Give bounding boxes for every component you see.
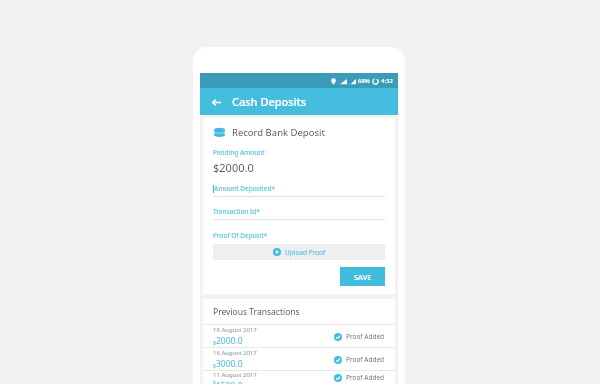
staticText: 11 August 2017: [213, 371, 257, 379]
staticText: Previous Transactions: [213, 306, 300, 318]
staticText: Proof Of Deposit*: [213, 231, 268, 240]
staticText: Record Bank Deposit: [232, 126, 325, 139]
button[interactable]: Back: [206, 92, 226, 112]
staticText: 3000.0: [216, 358, 243, 370]
staticText: Cash Deposits: [232, 94, 307, 109]
staticText: $: [213, 380, 216, 384]
staticText: 16 August 2017: [213, 349, 257, 357]
staticText: 16 August 2017: [213, 326, 257, 334]
staticText: 1500.0: [216, 380, 243, 384]
button[interactable]: 11 August 2017: [203, 371, 395, 384]
staticText: Transaction Id*: [213, 207, 260, 216]
staticText: 4:32: [381, 77, 393, 85]
staticText: Amount Deposited*: [214, 184, 275, 193]
button[interactable]: 16 August 2017: [203, 325, 395, 347]
staticText: Proof Added: [346, 355, 385, 364]
button[interactable]: SAVE: [340, 267, 385, 286]
staticText: Proof Added: [346, 373, 385, 382]
staticText: 68%: [358, 77, 370, 85]
staticText: SAVE: [354, 272, 372, 282]
staticText: 2000.0: [216, 335, 243, 347]
staticText: Pending Amount: [213, 148, 265, 157]
staticText: $: [213, 363, 216, 370]
staticText: Proof Added: [346, 332, 385, 341]
staticText: Upload Proof: [285, 248, 326, 257]
staticText: $: [213, 340, 216, 347]
button[interactable]: Upload Proof: [213, 244, 385, 260]
button[interactable]: 16 August 2017: [203, 348, 395, 370]
staticText: $2000.0: [213, 160, 254, 175]
